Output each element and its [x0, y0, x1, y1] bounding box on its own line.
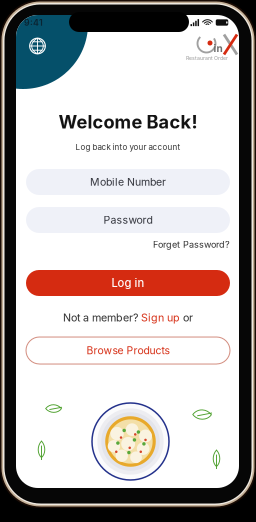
staticText: Log in — [111, 276, 144, 290]
staticText: Sign up — [141, 311, 180, 324]
button[interactable]: Forget Password? — [26, 239, 230, 250]
staticText: or — [180, 311, 193, 324]
button[interactable]: Log in — [26, 270, 230, 296]
staticText: in — [213, 42, 222, 55]
button[interactable]: Mobile Number — [26, 169, 230, 195]
button[interactable]: Browse Products — [26, 337, 230, 364]
staticText: Not a member? — [63, 311, 141, 324]
staticText: Welcome Back! — [58, 111, 197, 133]
staticText: Forget Password? — [153, 239, 230, 250]
staticText: Browse Products — [86, 344, 169, 357]
button[interactable]: Language — [25, 34, 49, 58]
staticText: Password — [103, 214, 152, 226]
staticText: 9:41 — [24, 17, 43, 28]
button[interactable]: Sign up — [141, 311, 180, 324]
button[interactable]: Password — [26, 207, 230, 233]
staticText: Mobile Number — [90, 176, 166, 188]
staticText: Log back into your account — [75, 142, 180, 152]
staticText: Restaurant Order — [186, 55, 228, 61]
